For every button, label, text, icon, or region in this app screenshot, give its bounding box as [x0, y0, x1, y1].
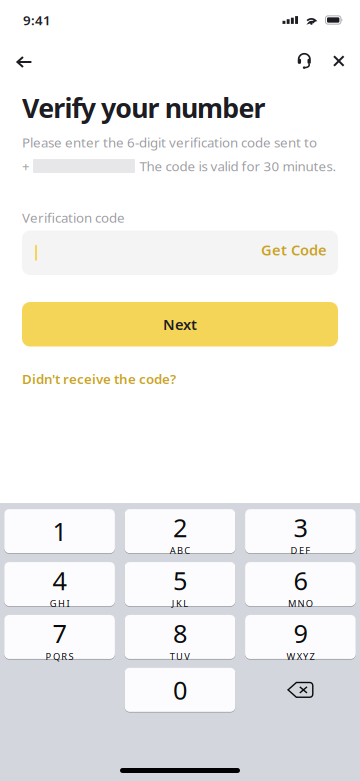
button[interactable]: Get Code [261, 233, 338, 273]
staticText: 5 [173, 563, 187, 597]
staticText: 0 [173, 673, 187, 707]
staticText: TUV [170, 650, 190, 662]
staticText: Didn't receive the code? [22, 370, 176, 388]
staticText: Verify your number [22, 90, 266, 125]
staticText: DEF [291, 544, 310, 557]
staticText: ABC [170, 544, 190, 557]
button[interactable]: 0 [125, 667, 235, 712]
button[interactable]: 4 [4, 561, 115, 607]
staticText: WXYZ [286, 650, 314, 662]
staticText: Next [163, 314, 197, 334]
staticText: Verification code [22, 209, 125, 226]
staticText: 9 [293, 616, 307, 650]
staticText: + [22, 157, 30, 175]
button[interactable]: 5 [125, 561, 235, 607]
button[interactable]: 3 [245, 508, 356, 554]
staticText: 3 [293, 511, 307, 544]
button[interactable]: Back [2, 40, 47, 82]
button[interactable]: 1 [4, 508, 115, 554]
button[interactable]: Customer support [289, 40, 320, 82]
staticText: 6 [293, 563, 307, 597]
staticText: Please enter the 6-digit verification co… [22, 133, 317, 151]
staticText: 8 [173, 616, 187, 650]
button[interactable]: Didn't receive the code? [22, 366, 176, 392]
staticText: JKL [172, 597, 188, 610]
button[interactable]: Next [22, 302, 338, 346]
staticText: 4 [53, 563, 67, 597]
staticText: 9:41 [23, 11, 51, 29]
button[interactable]: 2 [125, 508, 235, 554]
staticText: Get Code [261, 240, 327, 259]
button[interactable]: Close [320, 40, 358, 82]
button[interactable]: 9 [245, 614, 356, 660]
staticText: GHI [50, 597, 69, 610]
button[interactable]: 8 [125, 614, 235, 660]
staticText: PQRS [45, 650, 73, 662]
staticText: 7 [53, 616, 67, 650]
staticText: 1 [53, 514, 67, 548]
button[interactable]: 6 [245, 561, 356, 607]
staticText: The code is valid for 30 minutes. [139, 157, 336, 175]
staticText: MNO [288, 597, 313, 610]
button[interactable]: 7 [4, 614, 115, 660]
button[interactable]: Delete [245, 667, 356, 712]
staticText: 2 [173, 511, 187, 544]
